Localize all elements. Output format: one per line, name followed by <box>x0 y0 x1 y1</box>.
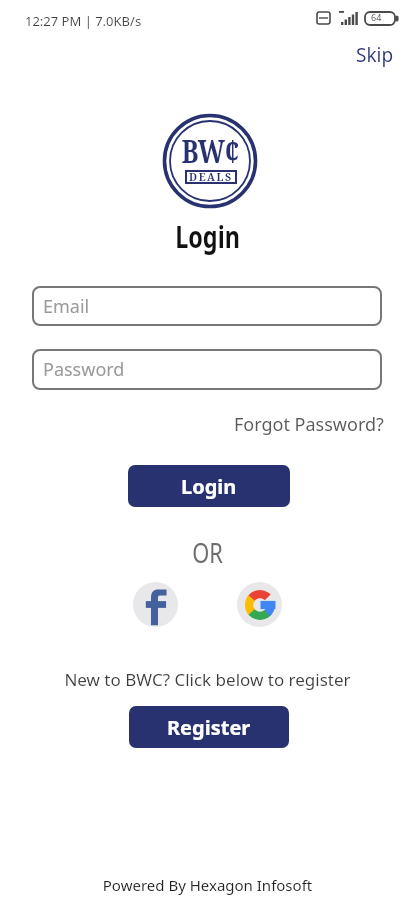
button[interactable]: Register <box>129 706 289 748</box>
staticText: BW¢ <box>181 128 240 172</box>
button[interactable]: Login <box>128 465 290 507</box>
staticText: Register <box>167 714 251 741</box>
button[interactable]: Skip <box>350 36 400 74</box>
staticText: Email <box>43 294 90 319</box>
staticText: DEALS <box>189 170 233 184</box>
staticText: Login <box>46 216 369 257</box>
staticText: 12:27 PM | 7.0KB/s <box>25 12 142 30</box>
button[interactable]: Password <box>32 349 382 390</box>
staticText: New to BWC? Click below to register <box>0 668 415 691</box>
staticText: OR <box>46 533 369 571</box>
button[interactable] <box>133 582 178 627</box>
staticText: Login <box>181 473 237 500</box>
staticText: Forgot Password? <box>234 412 384 437</box>
staticText: Skip <box>356 42 394 68</box>
button[interactable]: Email <box>32 286 382 326</box>
staticText: Password <box>43 357 125 382</box>
button[interactable] <box>237 582 282 627</box>
staticText: 64 <box>371 11 382 23</box>
button[interactable]: Forgot Password? <box>234 412 384 437</box>
staticText: Powered By Hexagon Infosoft <box>0 875 415 895</box>
